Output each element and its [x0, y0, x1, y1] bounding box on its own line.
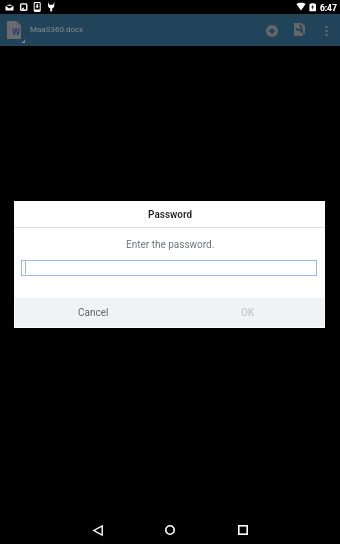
button[interactable]: OK — [169, 298, 324, 327]
staticText: W — [12, 26, 21, 37]
staticText: Enter the password. — [126, 239, 215, 251]
button[interactable]: More options — [315, 19, 338, 42]
staticText: MaaS360.docx — [30, 25, 84, 34]
staticText: 6:47 — [320, 3, 337, 13]
staticText: Cancel — [78, 307, 109, 319]
button[interactable]: Home — [152, 512, 188, 544]
button[interactable]: Recent apps — [225, 512, 261, 544]
staticText: Password — [148, 209, 193, 221]
button[interactable]: Add annotation — [260, 19, 283, 42]
button[interactable]: Back — [80, 512, 116, 544]
button[interactable]: Cancel — [15, 298, 169, 327]
button[interactable]: Document tools — [288, 18, 311, 41]
staticText: OK — [241, 307, 255, 319]
